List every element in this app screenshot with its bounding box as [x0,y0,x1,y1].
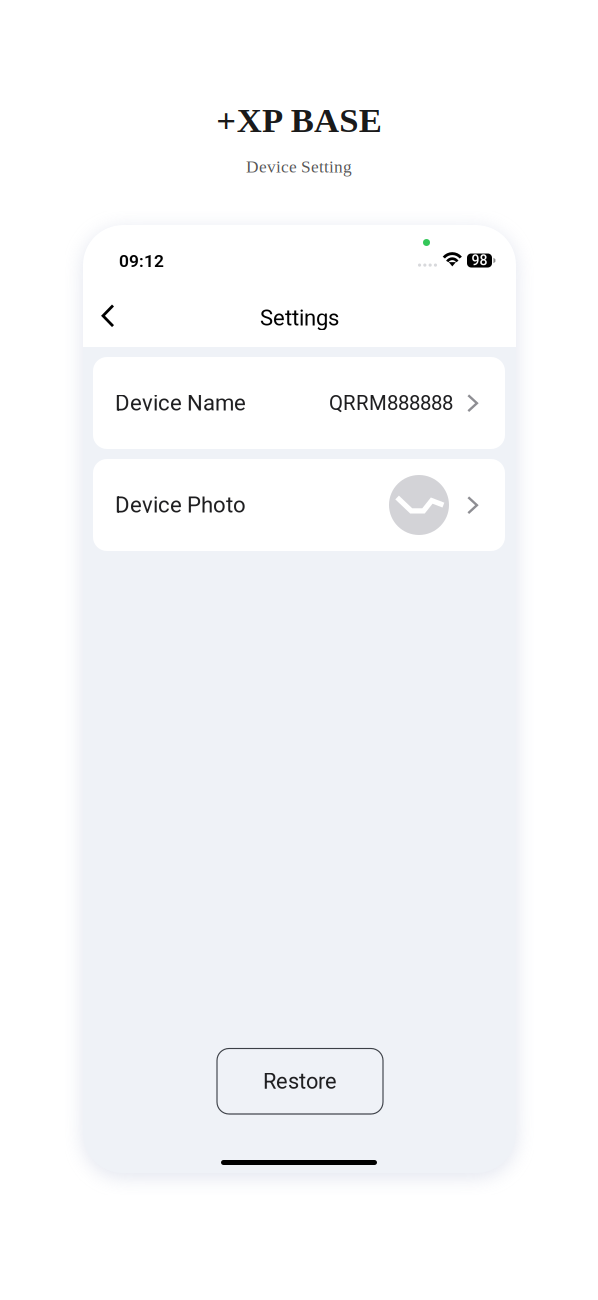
staticText: Device Name [115,390,246,416]
staticText: Device Photo [115,492,246,518]
staticText: Device Setting [246,157,352,176]
staticText: Restore [263,1068,337,1094]
button[interactable]: Device Name [93,357,505,449]
button[interactable]: Back [85,293,131,339]
button[interactable]: Restore [217,1048,383,1114]
staticText: Settings [260,305,339,331]
button[interactable]: Device Photo [93,459,505,551]
staticText: +XP BASE [216,101,382,139]
staticText: 98 [471,252,487,269]
staticText: QRRM888888 [329,391,453,415]
staticText: 09:12 [119,251,164,271]
